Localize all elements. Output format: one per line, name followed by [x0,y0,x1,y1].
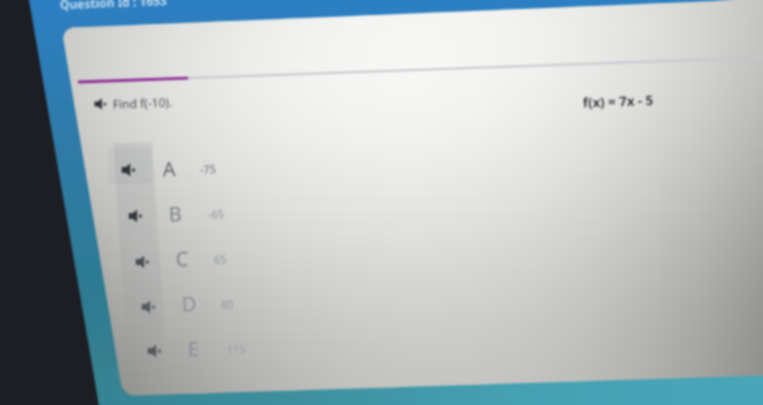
button[interactable]: E 115 [142,331,682,375]
button[interactable]: B -65 [123,196,663,240]
button[interactable]: Read question aloud [88,92,112,116]
button[interactable]: D 80 [136,286,676,330]
button[interactable]: A -75 [116,150,656,194]
button[interactable]: C 65 [130,241,670,285]
